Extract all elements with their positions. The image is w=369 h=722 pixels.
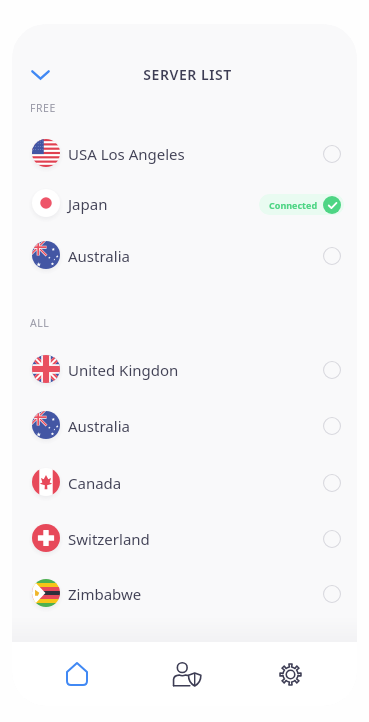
button[interactable]: Account bbox=[154, 642, 220, 706]
button[interactable]: Home bbox=[44, 642, 110, 706]
button[interactable]: Canada bbox=[12, 460, 357, 506]
staticText: Connected bbox=[269, 199, 318, 211]
button[interactable]: Australia bbox=[12, 403, 357, 449]
staticText: ALL bbox=[30, 316, 50, 330]
staticText: SERVER LIST bbox=[15, 65, 357, 84]
staticText: Switzerland bbox=[68, 529, 150, 549]
staticText: Australia bbox=[68, 246, 130, 266]
button[interactable]: Switzerland bbox=[12, 516, 357, 562]
staticText: FREE bbox=[30, 101, 56, 115]
staticText: Zimbabwe bbox=[68, 584, 142, 604]
button[interactable]: Collapse bbox=[20, 55, 60, 95]
button[interactable]: USA Los Angeles bbox=[12, 131, 357, 177]
staticText: Japan bbox=[68, 194, 108, 214]
staticText: Australia bbox=[68, 416, 130, 436]
button[interactable]: Australia bbox=[12, 233, 357, 279]
button[interactable]: Japan bbox=[12, 181, 357, 227]
button[interactable]: Zimbabwe bbox=[12, 571, 357, 617]
button[interactable]: United Kingdon bbox=[12, 347, 357, 393]
staticText: USA Los Angeles bbox=[68, 144, 185, 164]
button[interactable]: Settings bbox=[257, 642, 323, 706]
staticText: Canada bbox=[68, 473, 122, 493]
staticText: United Kingdon bbox=[68, 360, 179, 380]
